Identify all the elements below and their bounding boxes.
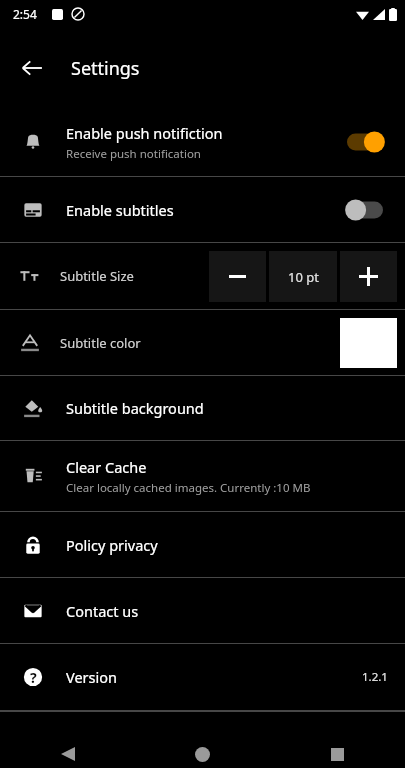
staticText: Version	[66, 667, 117, 687]
button[interactable]: Subtitle color	[0, 310, 405, 375]
staticText: Clear locally cached images. Currently :…	[66, 480, 311, 496]
button[interactable]: Back	[0, 712, 135, 768]
staticText: Subtitle Size	[60, 267, 134, 285]
staticText: Policy privacy	[66, 535, 158, 555]
button[interactable]: Enable subtitles	[0, 177, 405, 242]
button[interactable]: Toggle on	[339, 127, 391, 157]
button[interactable]: Enable push notifiction	[0, 108, 405, 176]
staticText: Enable push notifiction	[66, 123, 223, 143]
staticText: Contact us	[66, 601, 139, 621]
staticText: 1.2.1	[362, 669, 388, 685]
button[interactable]: Policy privacy	[0, 512, 405, 577]
staticText: Settings	[71, 56, 140, 81]
button[interactable]: Increase	[340, 251, 397, 302]
staticText: Subtitle color	[60, 334, 141, 352]
button[interactable]: 10 pt	[269, 251, 337, 302]
button[interactable]: Recents	[270, 712, 405, 768]
button[interactable]: Contact us	[0, 578, 405, 643]
staticText: Enable subtitles	[66, 200, 174, 220]
button[interactable]: Back	[10, 46, 54, 90]
button[interactable]: ?	[0, 644, 405, 710]
staticText: Clear Cache	[66, 457, 147, 477]
staticText: ?	[30, 668, 37, 687]
button[interactable]: Toggle off	[339, 195, 391, 225]
button[interactable]: Subtitle background	[0, 376, 405, 440]
staticText: 10 pt	[288, 268, 319, 286]
button[interactable]: Clear Cache	[0, 441, 405, 511]
staticText: 2:54	[13, 6, 37, 22]
button[interactable]: Home	[135, 712, 270, 768]
button[interactable]: Decrease	[209, 251, 266, 302]
staticText: Subtitle background	[66, 398, 204, 418]
staticText: Receive push notification	[66, 146, 201, 162]
